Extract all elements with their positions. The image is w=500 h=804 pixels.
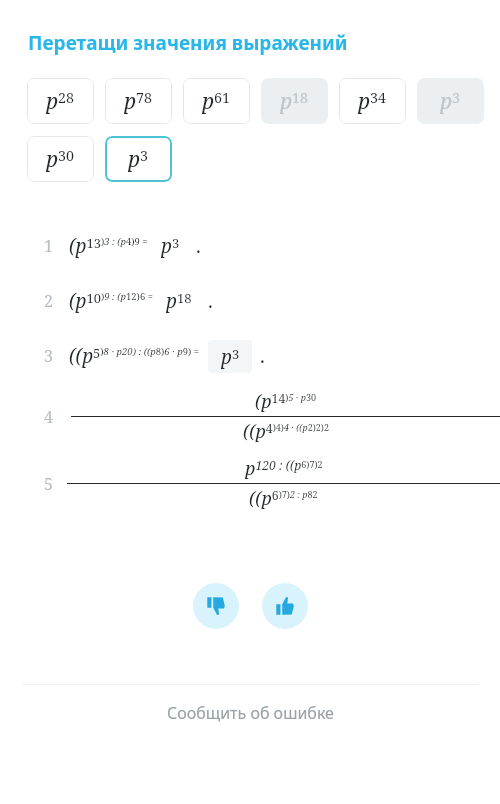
staticText: p61 [202,87,231,116]
staticText: 5 [44,473,53,495]
staticText: Перетащи значения выражений [28,30,348,56]
staticText: ((p6)7)2 : p82 [249,486,318,511]
staticText: p3 [128,145,149,174]
staticText: p78 [124,87,153,116]
button[interactable]: p30 [27,136,94,182]
staticText: p3 [221,344,240,370]
staticText: (p10)9 : (p12)6 = [69,288,153,314]
staticText: p30 [46,145,75,174]
button[interactable]: Сообщить об ошибке [0,685,500,741]
button[interactable]: Thumbs down [193,583,239,629]
staticText: p18 [166,288,192,314]
button[interactable]: p28 [27,78,94,124]
button[interactable]: p3 [105,136,172,182]
staticText: p34 [358,87,387,116]
staticText: 1 [44,235,53,257]
staticText: . [196,233,201,259]
button[interactable]: Thumbs up [262,583,308,629]
staticText: 3 [44,345,53,367]
button[interactable]: p18 [261,78,328,124]
staticText: 4 [44,406,53,428]
staticText: p3 [161,233,180,259]
button[interactable]: p78 [105,78,172,124]
staticText: 2 [44,290,53,312]
button[interactable]: p61 [183,78,250,124]
button[interactable]: p3 [417,78,484,124]
staticText: p3 [440,87,461,116]
staticText: p120 : ((p6)7)2 [245,456,323,481]
button[interactable]: p34 [339,78,406,124]
staticText: p18 [280,87,309,116]
staticText: p28 [46,87,75,116]
staticText: (p13)3 : (p4)9 = [69,233,148,259]
button[interactable]: p3 [208,340,252,373]
staticText: (p14)5 · p30 [255,389,316,414]
staticText: . [208,288,213,314]
staticText: . [260,343,265,369]
staticText: Сообщить об ошибке [167,702,334,724]
staticText: ((p4)4)4 · ((p2)2)2 [243,419,329,444]
staticText: ((p5)8 · p20) : ((p8)6 · p9) = [69,343,200,369]
